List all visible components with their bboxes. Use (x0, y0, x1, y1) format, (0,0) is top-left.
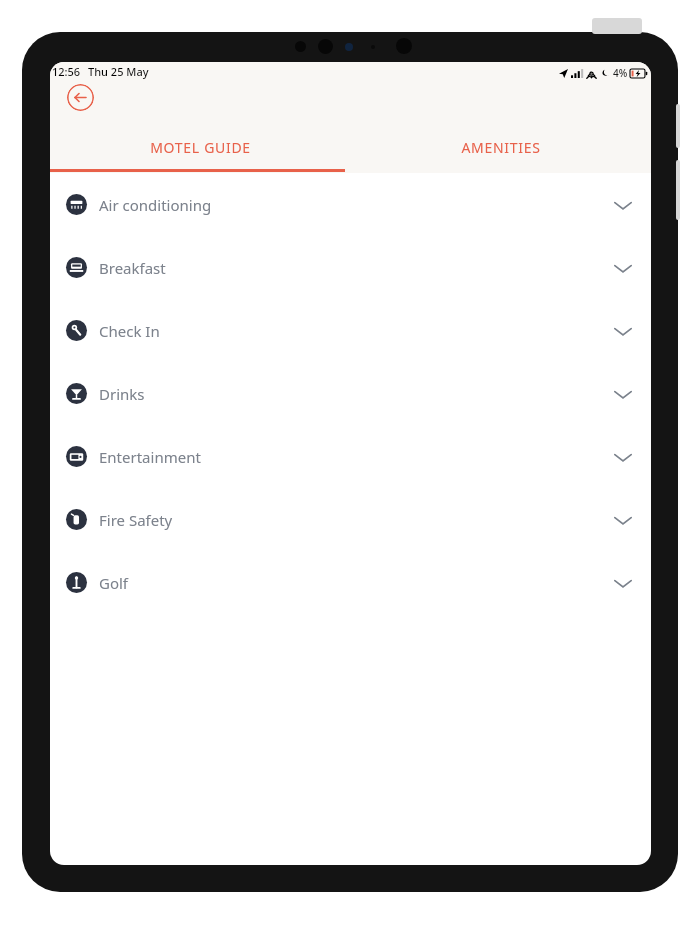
staticText: MOTEL GUIDE (150, 138, 251, 157)
staticText: AMENITIES (461, 138, 541, 157)
staticText: Drinks (99, 384, 145, 404)
button[interactable]: Breakfast (50, 236, 651, 299)
button[interactable]: MOTEL GUIDE (50, 125, 350, 169)
button[interactable]: Fire Safety (50, 488, 651, 551)
button[interactable]: Back (67, 84, 94, 111)
staticText: 12:56 (52, 64, 81, 79)
button[interactable]: Air conditioning (50, 173, 651, 236)
staticText: 4% (613, 66, 628, 80)
staticText: Entertainment (99, 447, 201, 467)
staticText: Thu 25 May (88, 64, 149, 79)
staticText: Fire Safety (99, 510, 173, 530)
staticText: Air conditioning (99, 195, 212, 215)
button[interactable]: Golf (50, 551, 651, 614)
staticText: Breakfast (99, 258, 166, 278)
staticText: Check In (99, 321, 160, 341)
button[interactable]: Drinks (50, 362, 651, 425)
button[interactable]: AMENITIES (350, 125, 651, 169)
button[interactable]: Entertainment (50, 425, 651, 488)
staticText: Golf (99, 573, 129, 593)
button[interactable]: Check In (50, 299, 651, 362)
